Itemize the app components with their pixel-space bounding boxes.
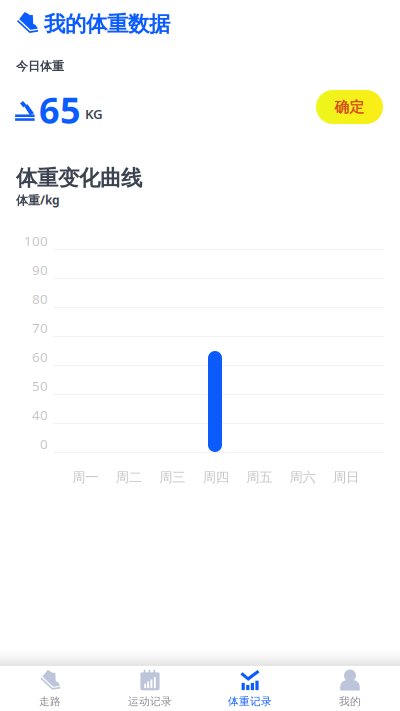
- button[interactable]: 走路: [0, 666, 100, 711]
- staticText: 周四: [203, 469, 229, 485]
- staticText: 50: [32, 377, 48, 395]
- staticText: 体重/kg: [16, 192, 60, 208]
- staticText: 周六: [290, 469, 316, 485]
- button[interactable]: 运动记录: [100, 666, 200, 711]
- staticText: 周二: [116, 469, 142, 485]
- staticText: 我的: [339, 695, 361, 708]
- staticText: 60: [32, 348, 48, 366]
- staticText: 70: [32, 319, 48, 337]
- staticText: 体重记录: [228, 695, 272, 708]
- staticText: 65: [39, 86, 81, 134]
- button[interactable]: 体重记录: [200, 666, 300, 711]
- staticText: 周三: [159, 469, 185, 485]
- staticText: 80: [32, 290, 48, 308]
- staticText: 确定: [334, 98, 364, 116]
- staticText: 100: [24, 232, 48, 250]
- staticText: 体重变化曲线: [16, 165, 142, 191]
- staticText: 我的体重数据: [44, 11, 170, 37]
- staticText: 周一: [72, 469, 98, 485]
- button[interactable]: 确定: [316, 90, 383, 124]
- staticText: 0: [40, 435, 48, 453]
- staticText: 90: [32, 261, 48, 279]
- staticText: 走路: [39, 695, 61, 708]
- staticText: 40: [32, 406, 48, 424]
- staticText: 运动记录: [128, 695, 172, 708]
- staticText: 周日: [333, 469, 359, 485]
- staticText: 今日体重: [16, 59, 64, 74]
- staticText: 周五: [246, 469, 272, 485]
- staticText: KG: [85, 105, 103, 123]
- button[interactable]: 我的: [300, 666, 400, 711]
